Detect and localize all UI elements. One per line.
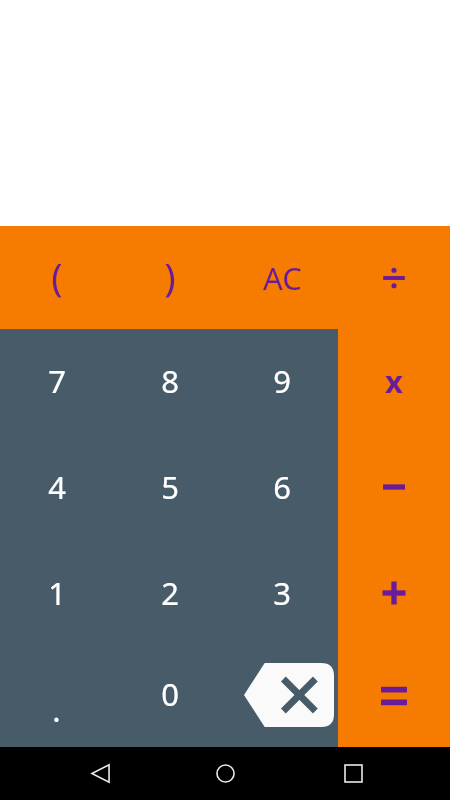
button[interactable]: 6 bbox=[226, 433, 338, 541]
staticText: 7 bbox=[48, 360, 66, 402]
button[interactable]: Recent apps bbox=[329, 747, 377, 800]
staticText: 2 bbox=[161, 572, 179, 614]
button[interactable]: ) bbox=[113, 226, 226, 329]
staticText: 3 bbox=[273, 572, 291, 614]
staticText: 8 bbox=[161, 360, 179, 402]
button[interactable]: 1 bbox=[0, 541, 113, 645]
button[interactable]: 9 bbox=[226, 329, 338, 433]
button[interactable]: . bbox=[0, 645, 113, 747]
button[interactable]: 3 bbox=[226, 541, 338, 645]
button[interactable]: ( bbox=[0, 226, 113, 329]
button[interactable]: Multiply bbox=[338, 329, 450, 433]
button[interactable]: 5 bbox=[113, 433, 226, 541]
button[interactable]: 4 bbox=[0, 433, 113, 541]
staticText: AC bbox=[263, 257, 302, 299]
staticText: ( bbox=[51, 250, 63, 302]
button[interactable]: 0 bbox=[113, 645, 226, 747]
staticText: 4 bbox=[48, 466, 66, 508]
button[interactable]: Back bbox=[76, 747, 124, 800]
button[interactable]: 8 bbox=[113, 329, 226, 433]
button[interactable]: Plus bbox=[338, 541, 450, 645]
staticText: 5 bbox=[161, 466, 179, 508]
button[interactable]: 7 bbox=[0, 329, 113, 433]
button[interactable]: Divide bbox=[338, 226, 450, 329]
button[interactable]: Minus bbox=[338, 433, 450, 541]
button[interactable]: AC bbox=[226, 226, 338, 329]
staticText: 1 bbox=[48, 572, 66, 614]
staticText: . bbox=[52, 689, 61, 731]
button[interactable]: Backspace bbox=[244, 663, 334, 727]
staticText: 6 bbox=[273, 466, 291, 508]
staticText: x bbox=[385, 360, 403, 402]
button[interactable]: 2 bbox=[113, 541, 226, 645]
button[interactable]: Equals bbox=[338, 645, 450, 747]
staticText: ) bbox=[164, 250, 176, 302]
button[interactable]: Home bbox=[201, 747, 249, 800]
staticText: 9 bbox=[273, 360, 291, 402]
staticText: 0 bbox=[161, 673, 179, 715]
